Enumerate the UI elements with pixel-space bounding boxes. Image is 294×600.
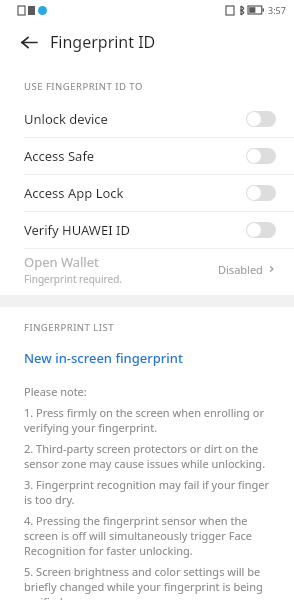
button[interactable]: New in-screen fingerprint	[0, 342, 294, 374]
button[interactable]: Access Safe	[0, 138, 294, 174]
button[interactable]: Verify HUAWEI ID	[0, 212, 294, 248]
staticText: 5. Screen brightness and color settings …	[24, 564, 276, 600]
staticText: 3. Fingerprint recognition may fail if y…	[24, 477, 276, 507]
staticText: Fingerprint ID	[50, 31, 156, 53]
button[interactable]: Access App Lock	[0, 175, 294, 211]
button[interactable]: Unlock device	[0, 101, 294, 137]
staticText: Access Safe	[24, 147, 246, 165]
staticText: 2. Third-party screen protectors or dirt…	[24, 441, 276, 471]
staticText: 3:57	[268, 4, 286, 16]
staticText: USE FINGERPRINT ID TO	[24, 80, 143, 93]
staticText: 1. Press firmly on the screen when enrol…	[24, 405, 276, 435]
staticText: New in-screen fingerprint	[24, 349, 183, 367]
button[interactable]: Back	[12, 25, 46, 59]
staticText: FINGERPRINT LIST	[24, 321, 115, 334]
staticText: Open Wallet	[24, 253, 99, 271]
staticText: Disabled	[218, 262, 263, 277]
staticText: Fingerprint required.	[24, 272, 122, 286]
staticText: Please note:	[24, 384, 87, 399]
staticText: Access App Lock	[24, 184, 246, 202]
button[interactable]: Open Wallet	[0, 249, 294, 289]
staticText: Unlock device	[24, 110, 246, 128]
staticText: Verify HUAWEI ID	[24, 221, 246, 239]
staticText: 4. Pressing the fingerprint sensor when …	[24, 513, 276, 558]
